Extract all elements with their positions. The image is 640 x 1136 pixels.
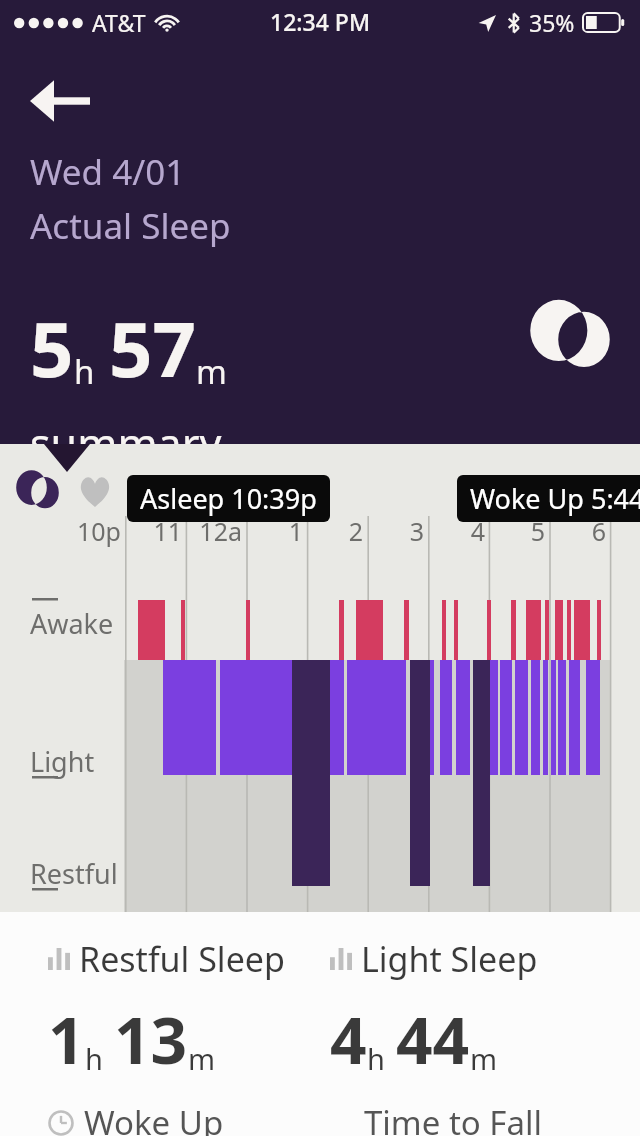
staticText: h	[74, 349, 95, 394]
staticText: m	[196, 349, 227, 394]
staticText: Time to Fall Asleep	[364, 1100, 640, 1136]
button[interactable]: Light Sleep	[330, 912, 640, 1083]
staticText: AT&T	[92, 7, 146, 38]
staticText: 5	[30, 296, 74, 400]
button[interactable]: Woke Up 5:44a	[457, 475, 640, 522]
button[interactable]: Heart rate	[78, 476, 112, 508]
staticText: Restful Sleep	[79, 936, 285, 982]
staticText: 13	[114, 996, 188, 1083]
staticText: m	[188, 1039, 216, 1078]
staticText: 3	[409, 514, 424, 548]
staticText: m	[470, 1039, 498, 1078]
staticText: Woke Up 5:44a	[470, 480, 640, 517]
staticText: h	[367, 1039, 385, 1078]
staticText: Awake	[30, 605, 114, 642]
staticText: 1	[288, 514, 303, 548]
other: Sleep	[556, 310, 612, 370]
staticText: 10p	[77, 514, 121, 548]
button[interactable]: Asleep 10:39p	[127, 475, 330, 522]
button[interactable]: Back	[18, 66, 102, 136]
staticText: 57	[109, 296, 196, 400]
staticText: 44	[396, 996, 470, 1083]
staticText: Light Sleep	[361, 936, 538, 982]
staticText: 11	[153, 514, 182, 548]
staticText: Woke Up	[84, 1100, 224, 1136]
staticText: 35%	[529, 7, 575, 38]
staticText: 6	[591, 514, 606, 548]
button[interactable]: Restful Sleep	[48, 912, 320, 1083]
staticText: 4	[470, 514, 485, 548]
other: Sleep stages	[30, 476, 60, 510]
staticText: Actual Sleep	[30, 202, 231, 250]
staticText: 4	[330, 996, 367, 1083]
staticText: 12a	[199, 514, 242, 548]
staticText: h	[85, 1039, 103, 1078]
staticText: Light	[30, 743, 95, 780]
staticText: 12:34 PM	[270, 6, 371, 37]
staticText: 5	[530, 514, 545, 548]
staticText: 2	[348, 514, 363, 548]
staticText: 1	[48, 996, 85, 1083]
staticText: summary	[30, 414, 222, 473]
staticText: Restful	[30, 855, 118, 892]
staticText: Asleep 10:39p	[140, 480, 317, 517]
staticText: Wed 4/01	[30, 148, 186, 196]
